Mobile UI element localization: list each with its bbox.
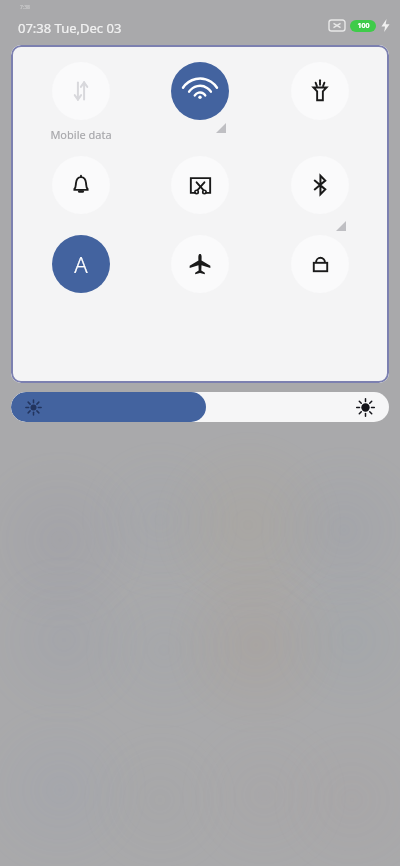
staticText: 100 bbox=[357, 21, 370, 31]
button[interactable]: Quick setting toggle bbox=[171, 235, 229, 293]
button[interactable]: Quick setting toggle bbox=[171, 156, 229, 214]
button[interactable]: Quick setting toggle bbox=[291, 62, 349, 120]
button[interactable]: Quick setting toggle bbox=[52, 156, 110, 214]
button[interactable]: Quick setting toggle bbox=[291, 235, 349, 293]
button[interactable]: Brightness bbox=[11, 392, 389, 422]
button[interactable]: Quick setting toggle bbox=[291, 156, 349, 214]
button[interactable]: Quick setting toggle bbox=[171, 62, 229, 120]
staticText: 7:38 bbox=[20, 4, 30, 11]
staticText: Mobile data bbox=[50, 127, 112, 142]
button[interactable]: Mobile data bbox=[52, 62, 110, 120]
staticText: 07:38 Tue,Dec 03 bbox=[18, 19, 122, 37]
button[interactable]: Quick setting toggle bbox=[52, 235, 110, 293]
staticText: A bbox=[74, 249, 88, 279]
